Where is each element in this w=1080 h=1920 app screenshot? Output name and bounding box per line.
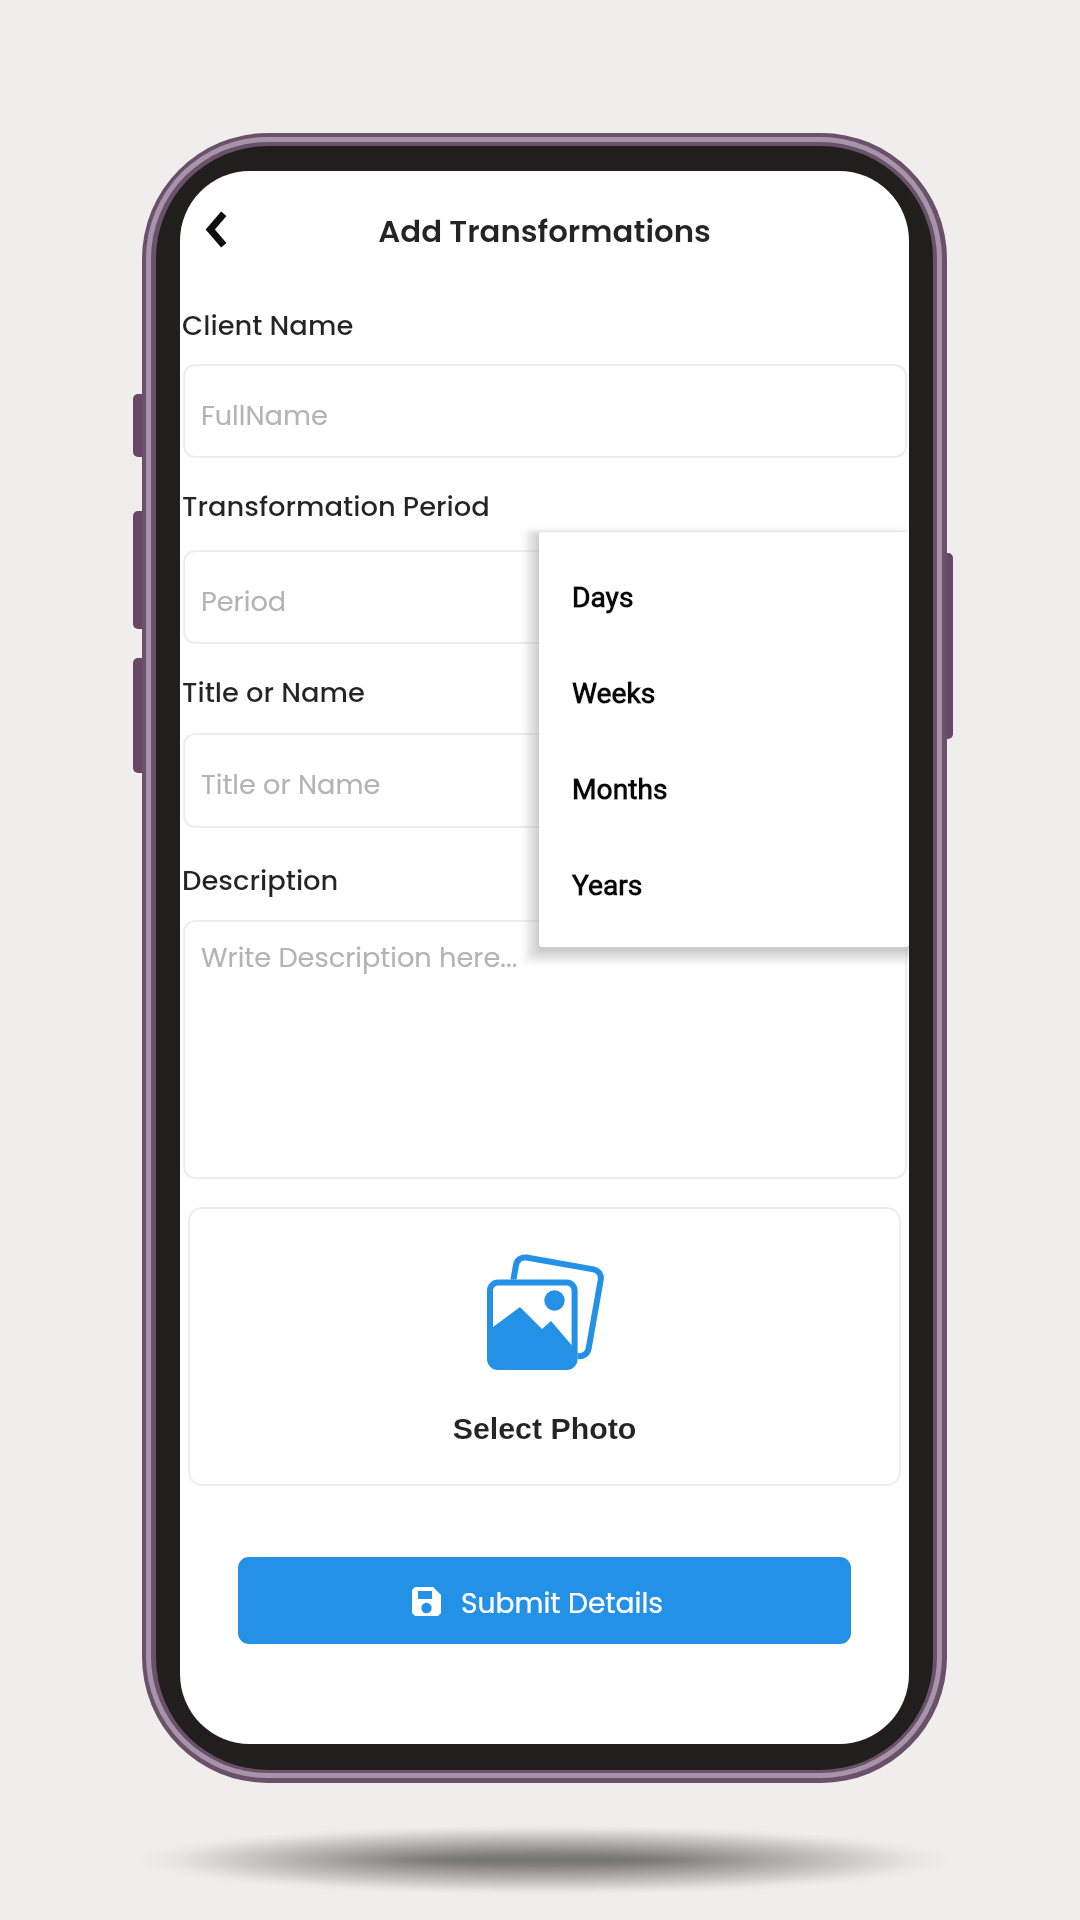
button[interactable] — [539, 644, 909, 740]
button[interactable] — [188, 1207, 901, 1486]
button[interactable] — [183, 550, 907, 644]
staticText: Months — [572, 773, 668, 806]
staticText: Period — [201, 582, 287, 620]
staticText: Title or Name — [182, 673, 365, 711]
button[interactable] — [183, 733, 907, 828]
staticText: Write Description here... — [201, 938, 518, 976]
button[interactable] — [238, 1557, 851, 1644]
button[interactable] — [539, 836, 909, 932]
staticText: Client Name — [182, 306, 354, 344]
staticText: FullName — [201, 396, 328, 434]
staticText: Title or Name — [201, 765, 381, 803]
button[interactable] — [183, 364, 907, 458]
staticText: Submit Details — [461, 1583, 664, 1622]
staticText: Add Transformations — [180, 210, 909, 253]
button[interactable]: Back — [186, 187, 258, 271]
button[interactable] — [539, 740, 909, 836]
staticText: Weeks — [572, 677, 656, 710]
button[interactable] — [539, 548, 909, 644]
button[interactable] — [183, 920, 907, 1179]
staticText: Days — [572, 581, 634, 614]
staticText: Select Photo — [180, 1412, 909, 1446]
staticText: Transformation Period — [182, 487, 490, 525]
staticText: Description — [182, 861, 339, 899]
staticText: Years — [572, 869, 643, 902]
